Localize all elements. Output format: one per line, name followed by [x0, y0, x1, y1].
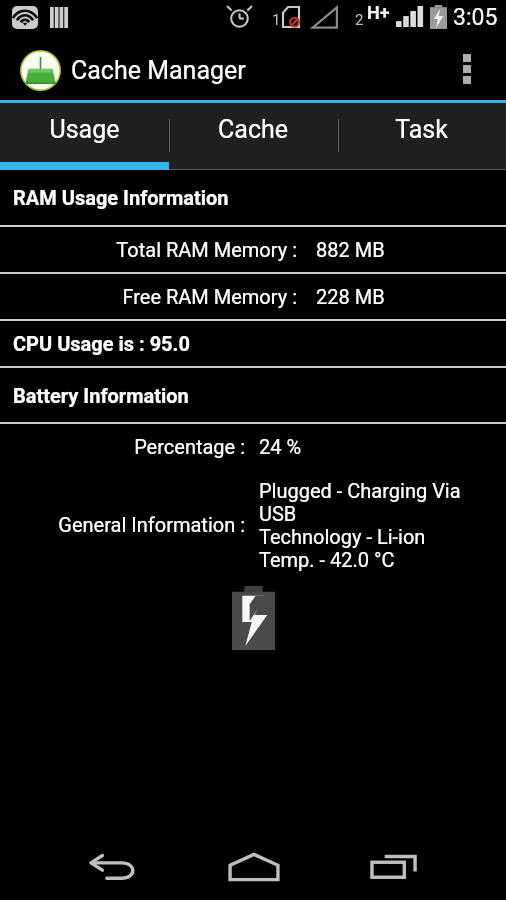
- button[interactable]: RAM Usage Information: [0, 170, 506, 225]
- staticText: Free RAM Memory :: [122, 285, 297, 308]
- button[interactable]: Battery Information: [0, 368, 506, 422]
- button[interactable]: Back: [42, 833, 183, 900]
- button[interactable]: CPU Usage is : 95.0: [0, 321, 506, 366]
- button[interactable]: Free RAM Memory :: [0, 274, 506, 319]
- staticText: Cache Manager: [71, 56, 246, 85]
- staticText: RAM Usage Information: [13, 186, 229, 209]
- staticText: Usage: [49, 115, 120, 144]
- staticText: H+: [367, 2, 390, 23]
- staticText: General Information :: [58, 513, 245, 536]
- staticText: Technology - Li-ion: [259, 525, 426, 548]
- staticText: 24 %: [259, 435, 302, 458]
- staticText: 2: [355, 11, 364, 29]
- button[interactable]: Percentage :: [0, 424, 506, 468]
- button[interactable]: Usage: [0, 103, 168, 170]
- staticText: 1: [272, 11, 281, 29]
- staticText: 3:05: [453, 4, 498, 31]
- button[interactable]: Task: [337, 103, 506, 170]
- staticText: Temp. - 42.0 °C: [259, 548, 395, 571]
- staticText: 882 MB: [316, 238, 385, 261]
- button[interactable]: Recent apps: [324, 833, 465, 900]
- staticText: Plugged - Charging Via: [259, 479, 461, 502]
- staticText: CPU Usage is : 95.0: [13, 332, 190, 355]
- button[interactable]: Cache: [168, 103, 337, 170]
- button[interactable]: Total RAM Memory :: [0, 227, 506, 272]
- button[interactable]: Home: [183, 833, 324, 900]
- staticText: Battery Information: [13, 384, 189, 407]
- staticText: Total RAM Memory :: [116, 238, 297, 261]
- button[interactable]: More options: [446, 36, 506, 103]
- staticText: 228 MB: [316, 285, 385, 308]
- staticText: Percentage :: [134, 435, 245, 458]
- staticText: Task: [395, 115, 448, 144]
- button[interactable]: General Information :: [0, 468, 506, 581]
- staticText: USB: [259, 502, 297, 525]
- staticText: Cache: [218, 115, 288, 144]
